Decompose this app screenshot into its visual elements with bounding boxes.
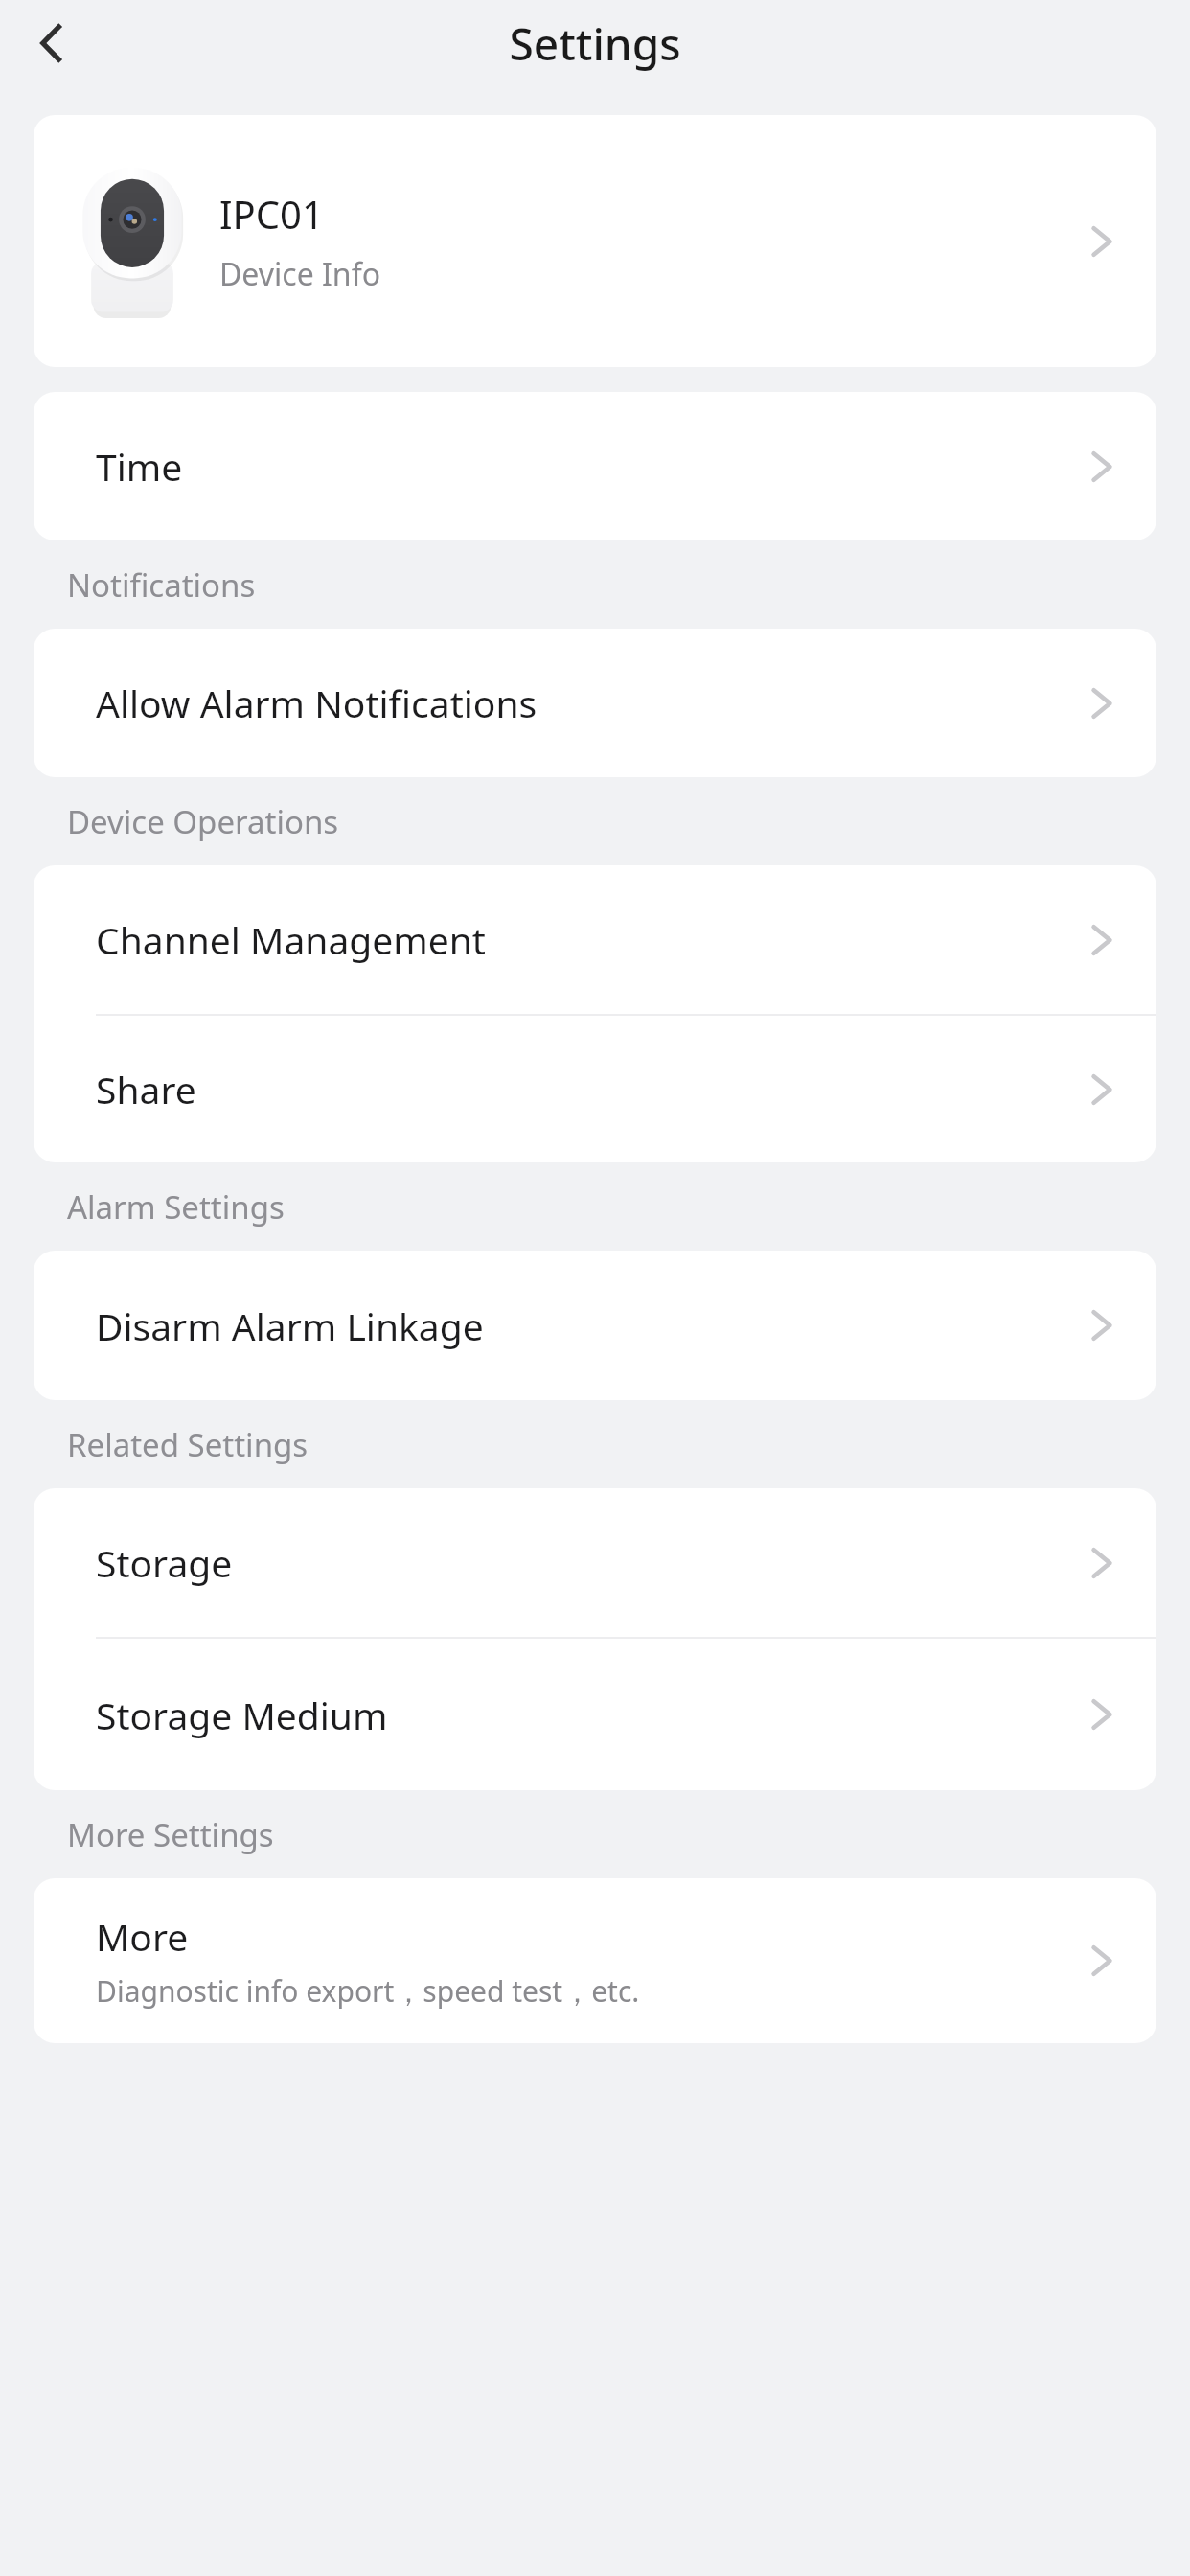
staticText: Allow Alarm Notifications	[96, 678, 1087, 728]
button[interactable]: IPC01	[34, 115, 1156, 367]
button[interactable]: Storage Medium	[34, 1639, 1156, 1790]
staticText: Disarm Alarm Linkage	[96, 1300, 1087, 1351]
button[interactable]: Time	[34, 392, 1156, 540]
staticText: Storage	[96, 1537, 1087, 1588]
button[interactable]: More	[34, 1878, 1156, 2043]
button[interactable]: Allow Alarm Notifications	[34, 629, 1156, 777]
staticText: Diagnostic info export，speed test，etc.	[96, 1971, 640, 2011]
button[interactable]: Back	[13, 5, 90, 81]
staticText: More	[96, 1911, 189, 1962]
staticText: Related Settings	[67, 1423, 309, 1466]
staticText: Storage Medium	[96, 1690, 1087, 1740]
staticText: Settings	[509, 13, 681, 74]
staticText: Device Info	[219, 253, 381, 295]
staticText: Time	[96, 441, 1087, 492]
staticText: Share	[96, 1064, 1087, 1115]
button[interactable]: Share	[34, 1016, 1156, 1162]
button[interactable]: Disarm Alarm Linkage	[34, 1251, 1156, 1400]
staticText: Channel Management	[96, 914, 1087, 965]
staticText: More Settings	[67, 1813, 274, 1856]
staticText: Device Operations	[67, 800, 339, 843]
staticText: IPC01	[219, 188, 324, 240]
staticText: Alarm Settings	[67, 1185, 285, 1229]
staticText: Notifications	[67, 563, 256, 607]
button[interactable]: Channel Management	[34, 865, 1156, 1014]
button[interactable]: Storage	[34, 1488, 1156, 1637]
